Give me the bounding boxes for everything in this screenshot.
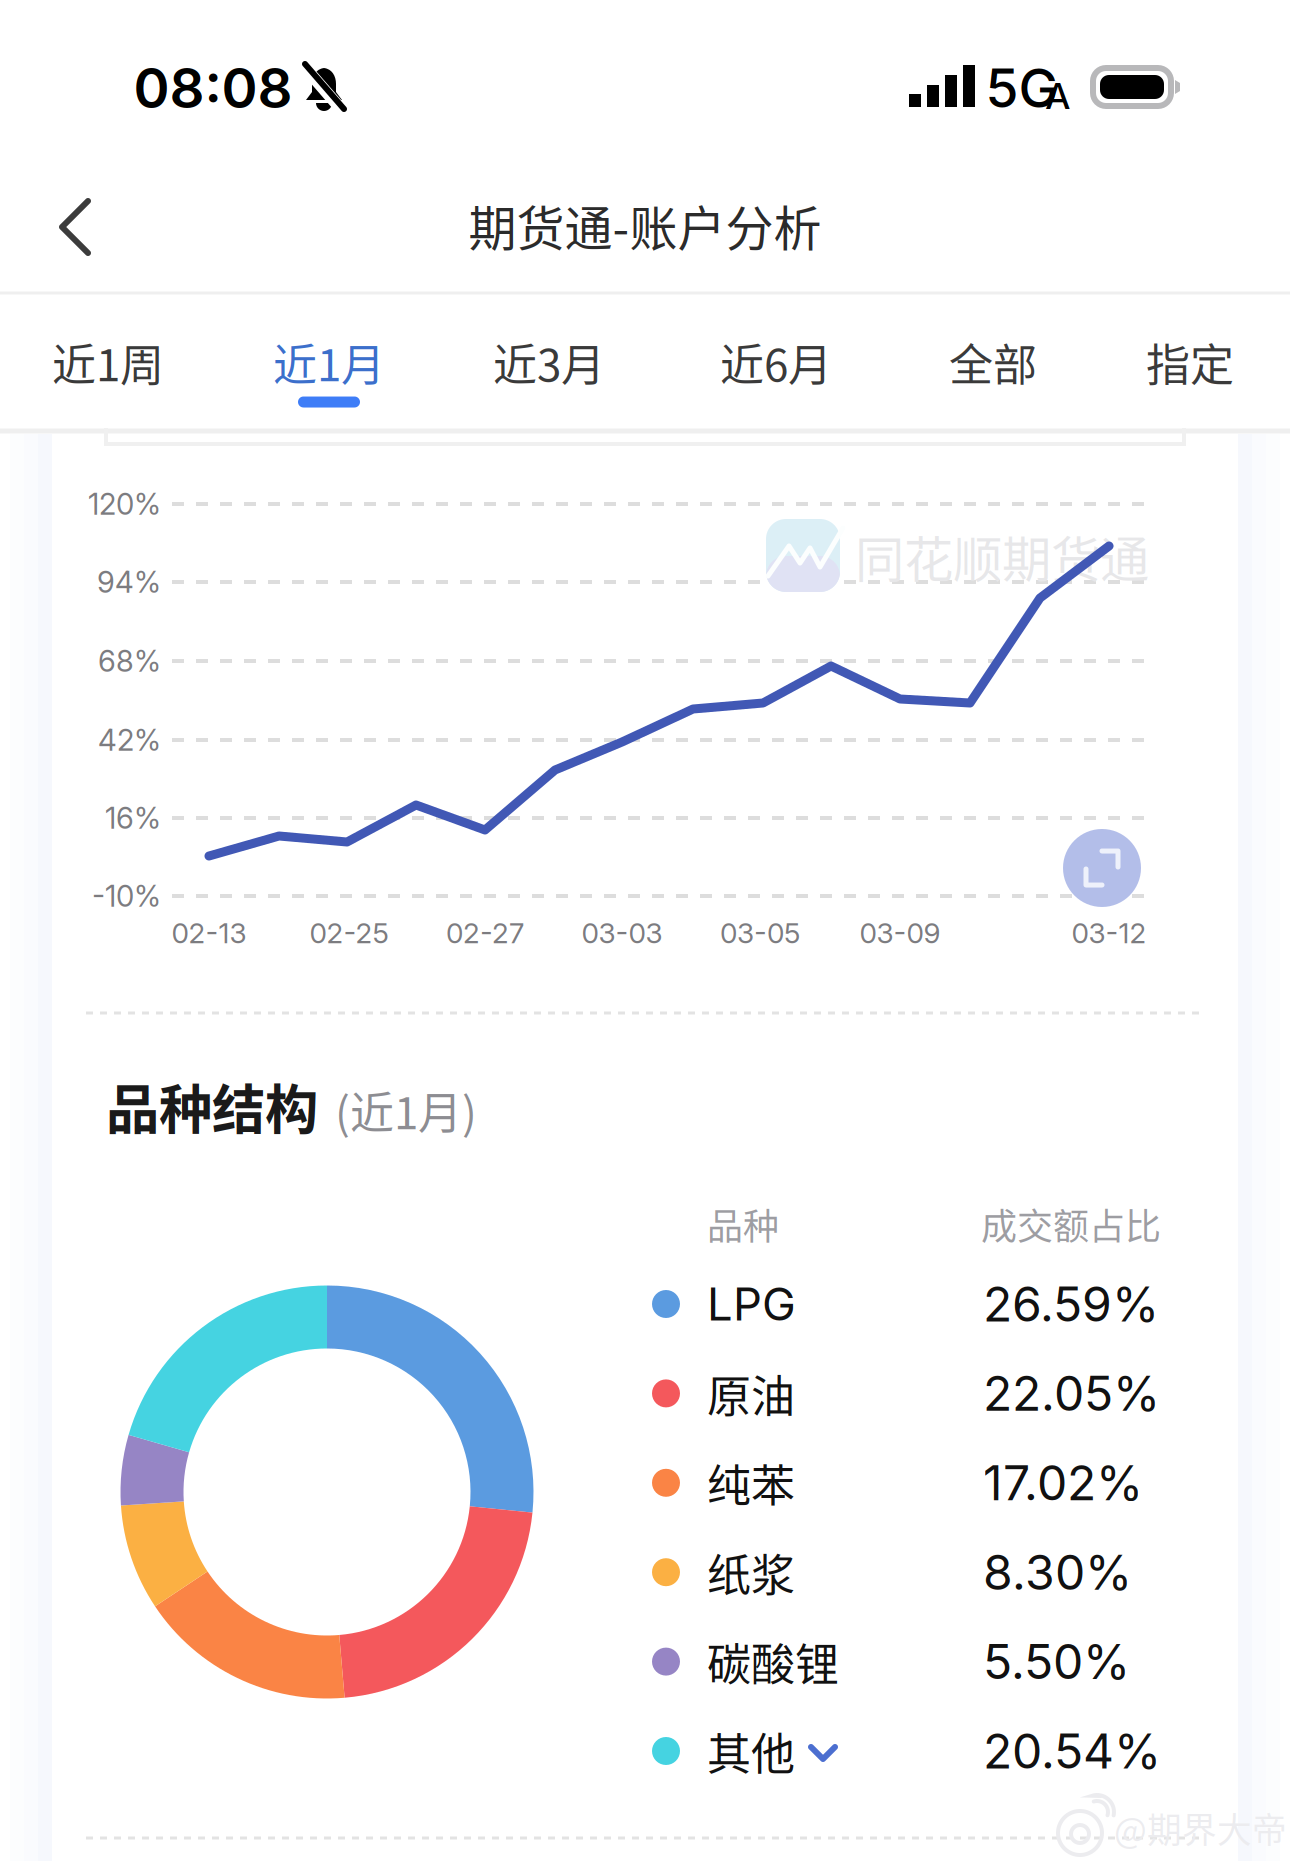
staticText: @期界大帝 bbox=[1114, 1803, 1287, 1853]
staticText: 期货通-账户分析 bbox=[468, 190, 821, 260]
staticText: 5.50% bbox=[983, 1633, 1130, 1691]
staticText: 近1周 bbox=[52, 330, 164, 394]
staticText: 近3月 bbox=[493, 330, 605, 394]
staticText: 120% bbox=[88, 486, 161, 522]
staticText: 同花顺期货通 bbox=[855, 520, 1149, 592]
staticText: 26.59% bbox=[983, 1275, 1159, 1333]
staticText: A bbox=[1045, 74, 1070, 118]
staticText: 42% bbox=[98, 722, 161, 758]
staticText: 成交额占比 bbox=[981, 1198, 1161, 1250]
button[interactable]: Expand chart bbox=[1063, 829, 1141, 907]
button[interactable]: Back bbox=[21, 175, 131, 279]
staticText: 03-09 bbox=[859, 916, 940, 950]
staticText: 08:08 bbox=[133, 55, 292, 121]
staticText: 近6月 bbox=[720, 330, 832, 394]
staticText: 近1月 bbox=[273, 330, 385, 394]
button[interactable]: 全部 bbox=[893, 294, 1093, 430]
button[interactable]: 指定 bbox=[1090, 294, 1290, 430]
button[interactable]: 近3月 bbox=[449, 294, 649, 430]
button[interactable]: 近1月 bbox=[229, 294, 429, 430]
staticText: 纸浆 bbox=[707, 1540, 795, 1604]
staticText: 02-27 bbox=[446, 916, 524, 950]
staticText: 20.54% bbox=[983, 1722, 1161, 1780]
staticText: 纯苯 bbox=[707, 1451, 795, 1515]
staticText: 02-25 bbox=[309, 916, 388, 950]
staticText: 02-13 bbox=[171, 916, 246, 950]
staticText: 5G bbox=[985, 56, 1058, 120]
button[interactable]: Show more categories bbox=[791, 1724, 855, 1782]
staticText: LPG bbox=[707, 1277, 796, 1331]
staticText: 16% bbox=[105, 800, 161, 836]
staticText: 指定 bbox=[1146, 330, 1234, 394]
staticText: 17.02% bbox=[983, 1454, 1143, 1512]
staticText: 品种结构 bbox=[106, 1067, 318, 1145]
staticText: 03-03 bbox=[581, 916, 662, 950]
staticText: 68% bbox=[98, 643, 161, 679]
staticText: 94% bbox=[97, 564, 161, 600]
staticText: 22.05% bbox=[983, 1364, 1160, 1422]
staticText: 03-05 bbox=[720, 916, 800, 950]
staticText: 8.30% bbox=[983, 1543, 1132, 1601]
staticText: 其他 bbox=[707, 1719, 795, 1783]
button[interactable]: 近6月 bbox=[676, 294, 876, 430]
staticText: (近1月) bbox=[335, 1078, 477, 1142]
button[interactable]: 近1周 bbox=[8, 294, 208, 430]
staticText: 碳酸锂 bbox=[707, 1630, 839, 1693]
staticText: 品种 bbox=[707, 1198, 779, 1250]
staticText: 原油 bbox=[707, 1361, 795, 1425]
staticText: 03-12 bbox=[1071, 916, 1146, 950]
staticText: 全部 bbox=[949, 330, 1037, 394]
staticText: -10% bbox=[92, 878, 161, 914]
